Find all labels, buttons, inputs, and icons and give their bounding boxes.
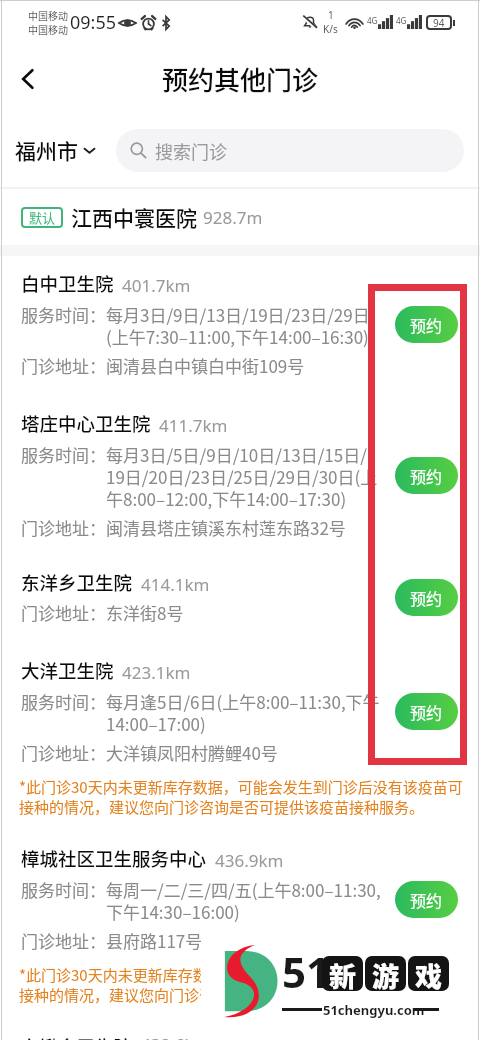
staticText: 预约: [410, 313, 443, 336]
staticText: 423.1km: [122, 661, 191, 684]
staticText: 每月3日/5日/9日/10日/13日/15日/ 19日/20日/23日/25日/…: [106, 442, 378, 511]
staticText: 门诊地址：: [21, 353, 106, 378]
staticText: 门诊地址：: [21, 600, 106, 625]
staticText: 预约其他门诊: [162, 60, 319, 98]
staticText: 预约: [410, 888, 443, 911]
button[interactable]: 预约: [395, 693, 458, 730]
staticText: 闽清县白中镇白中街109号: [106, 353, 305, 378]
staticText: 09:55: [70, 10, 117, 35]
staticText: *此门诊30天内未更新库存数据，可能会发生到门诊后没有该疫苗可 接种的情况，建议…: [19, 776, 466, 818]
staticText: K/s: [323, 22, 338, 36]
staticText: 服务时间：: [21, 689, 106, 714]
staticText: 戏: [415, 956, 442, 991]
staticText: 51chengyu.com: [323, 1001, 425, 1019]
staticText: 4G: [396, 15, 407, 26]
staticText: 服务时间：: [21, 877, 106, 902]
staticText: 游: [372, 956, 399, 991]
staticText: 414.1km: [141, 573, 210, 596]
staticText: 门诊地址：: [21, 515, 106, 540]
staticText: 928.7m: [203, 206, 263, 229]
staticText: 每月3日/9日/13日/19日/23日/29日 (上午7:30–11:00,下午…: [106, 302, 370, 349]
staticText: 门诊地址：: [21, 740, 106, 765]
staticText: 大洋卫生院: [21, 657, 114, 684]
staticText: 预约: [410, 586, 443, 609]
staticText: 搜索门诊: [155, 138, 227, 164]
button[interactable]: 预约: [395, 579, 458, 616]
staticText: 94: [433, 16, 445, 30]
staticText: 每周一/二/三/四/五(上午8:00–11:30, 下午14:30–16:00): [106, 877, 381, 924]
button[interactable]: 搜索门诊: [116, 129, 464, 172]
staticText: *此门诊30天内未更新库存数据，可能会发生到门诊后没有该疫苗可 接种的情况，建议…: [19, 964, 466, 1006]
button[interactable]: 白中卫生院: [0, 256, 480, 396]
staticText: 樟城社区卫生服务中心: [21, 845, 207, 872]
staticText: 436.9km: [215, 849, 284, 872]
staticText: 401.7km: [122, 274, 191, 297]
staticText: 中国移动: [28, 22, 68, 36]
button[interactable]: 预约: [395, 457, 458, 494]
staticText: 福州市: [15, 135, 78, 165]
button[interactable]: 樟城社区卫生服务中心: [0, 831, 480, 1019]
button[interactable]: 福州市: [15, 135, 96, 165]
staticText: 438.6km: [141, 1033, 210, 1040]
staticText: 1: [328, 8, 334, 22]
staticText: 中国移动: [28, 8, 68, 22]
button[interactable]: 东洋乡卫生院: [0, 555, 480, 643]
staticText: 塔庄中心卫生院: [21, 410, 151, 437]
staticText: 东洋街8号: [106, 600, 184, 625]
staticText: 每月逢5日/6日(上午8:00–11:30,下午 14:00–17:00): [106, 689, 380, 736]
staticText: 闽清县塔庄镇溪东村莲东路32号: [106, 515, 346, 540]
staticText: 服务时间：: [21, 442, 106, 467]
button[interactable]: 默认: [0, 189, 480, 245]
staticText: 新: [329, 956, 356, 991]
staticText: 411.7km: [159, 414, 228, 437]
staticText: 4G: [367, 15, 378, 26]
staticText: 江西中寰医院: [71, 202, 197, 232]
staticText: 东洋乡卫生院: [21, 569, 133, 596]
staticText: 服务时间：: [21, 302, 106, 327]
button[interactable]: 预约: [395, 881, 458, 918]
staticText: 县府路117号: [106, 928, 203, 953]
staticText: 东锹乡卫生院: [21, 1033, 133, 1040]
button[interactable]: 返回: [4, 55, 52, 103]
staticText: 默认: [29, 208, 56, 227]
staticText: 预约: [410, 464, 443, 487]
button[interactable]: 预约: [395, 306, 458, 343]
button[interactable]: 塔庄中心卫生院: [0, 396, 480, 555]
staticText: 门诊地址：: [21, 928, 106, 953]
button[interactable]: 东锹乡卫生院: [0, 1019, 480, 1040]
staticText: 51: [282, 943, 331, 1000]
staticText: 白中卫生院: [21, 270, 114, 297]
staticText: 大洋镇凤阳村腾鲤40号: [106, 740, 278, 765]
button[interactable]: 大洋卫生院: [0, 643, 480, 831]
staticText: 预约: [410, 700, 443, 723]
